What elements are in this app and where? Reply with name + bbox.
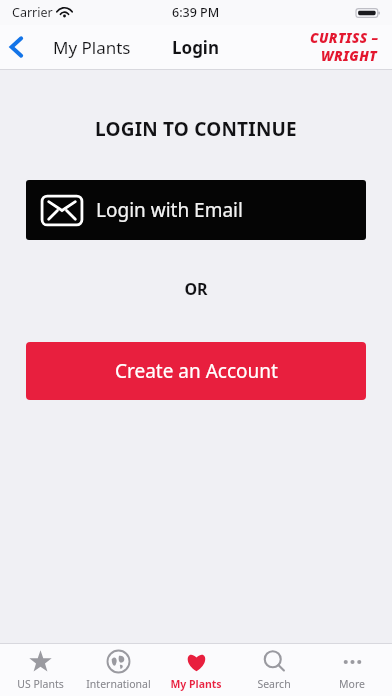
staticText: Carrier (12, 4, 53, 21)
staticText: More (339, 677, 365, 691)
button[interactable]: Back (0, 30, 31, 64)
button[interactable]: US Plants (2, 644, 78, 696)
staticText: My Plants (170, 677, 222, 691)
staticText: Search (257, 677, 291, 691)
staticText: Login with Email (96, 197, 243, 223)
staticText: WRIGHT (321, 47, 378, 65)
staticText: 6:39 PM (172, 4, 220, 21)
button[interactable]: Login with Email (26, 180, 366, 240)
button[interactable]: More (314, 644, 390, 696)
button[interactable]: Search (236, 644, 312, 696)
staticText: Create an Account (115, 358, 278, 384)
button[interactable]: My Plants (158, 644, 234, 696)
staticText: OR (0, 278, 392, 300)
staticText: Login (172, 36, 220, 59)
button[interactable]: International (80, 644, 156, 696)
staticText: International (86, 677, 151, 691)
staticText: My Plants (53, 36, 131, 59)
staticText: LOGIN TO CONTINUE (0, 116, 392, 142)
button[interactable]: Curtiss-Wright (310, 29, 379, 65)
button[interactable]: Create an Account (26, 342, 366, 400)
staticText: US Plants (17, 677, 64, 691)
staticText: CURTISS – (310, 29, 379, 47)
